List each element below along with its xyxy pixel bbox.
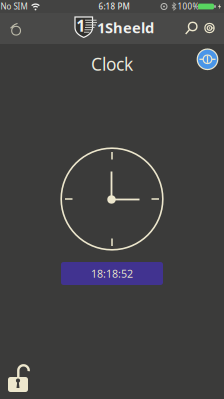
- staticText: Clock: [91, 52, 133, 75]
- button[interactable]: [204, 23, 215, 33]
- staticText: No SIM: [0, 1, 27, 12]
- staticText: 1Sheeld: [97, 18, 154, 37]
- button[interactable]: [183, 21, 198, 35]
- staticText: 6:18 PM: [98, 1, 129, 12]
- staticText: 100%: [177, 1, 199, 12]
- staticText: 18:18:52: [91, 266, 133, 281]
- button[interactable]: [6, 20, 22, 37]
- staticText: 1: [76, 15, 85, 36]
- button[interactable]: [4, 361, 32, 395]
- button[interactable]: [197, 49, 218, 69]
